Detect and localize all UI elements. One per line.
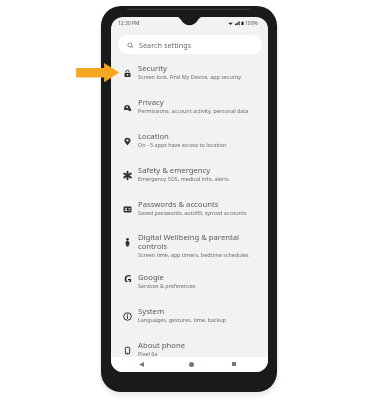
staticText: On - 5 apps have access to location [138,141,227,148]
staticText: Permissions, account activity, personal … [138,107,249,114]
button[interactable]: Security [111,63,268,91]
staticText: Screen lock, Find My Device, app securit… [138,73,242,80]
button[interactable]: Back [135,358,147,370]
button[interactable]: Location [111,131,268,159]
staticText: Security [138,63,167,73]
staticText: Emergency SOS, medical info, alerts [138,175,229,182]
button[interactable]: Digital Wellbeing & parental controls [111,232,268,264]
button[interactable]: Privacy [111,97,268,125]
staticText: G [124,271,132,282]
button[interactable]: Home [185,358,197,370]
button[interactable]: G [111,272,268,300]
button[interactable]: Safety & emergency [111,165,268,193]
staticText: Services & preferences [138,282,196,289]
button[interactable]: Recent apps [228,358,240,370]
staticText: Location [138,131,169,141]
staticText: Privacy [138,97,164,107]
button[interactable]: Passwords & accounts [111,199,268,227]
staticText: About phone [138,340,186,350]
staticText: Saved passwords, autofill, synced accoun… [138,209,247,216]
staticText: System [138,306,165,316]
staticText: Digital Wellbeing & parental controls [138,232,240,251]
button[interactable]: About phone [111,340,268,368]
button[interactable]: Search settings [118,35,262,54]
staticText: 100% [245,20,258,27]
staticText: Search settings [139,40,192,50]
staticText: Passwords & accounts [138,199,219,209]
button[interactable]: System [111,306,268,334]
staticText: Google [138,272,164,282]
staticText: 12:30 PM [118,20,140,27]
staticText: Screen time, app timers, bedtime schedul… [138,251,249,258]
staticText: Pixel 6a [138,350,158,357]
staticText: Safety & emergency [138,165,211,175]
staticText: Languages, gestures, time, backup [138,316,227,323]
